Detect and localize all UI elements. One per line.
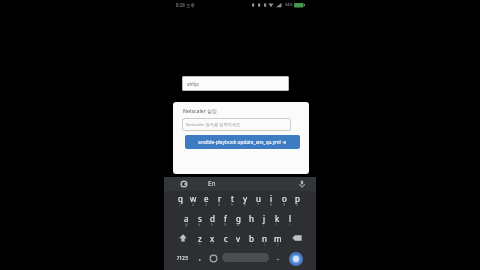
button[interactable]: y xyxy=(239,189,252,207)
button[interactable] xyxy=(176,231,190,245)
button[interactable] xyxy=(222,253,269,262)
button[interactable]: v xyxy=(232,229,245,247)
staticText: ansible-playbook update_ans_qa.yml -e xyxy=(198,139,287,146)
staticText: e xyxy=(204,193,209,204)
button[interactable]: e xyxy=(200,189,213,207)
button[interactable] xyxy=(290,232,304,244)
button[interactable]: j xyxy=(258,209,271,227)
staticText: f xyxy=(224,213,227,224)
staticText: 2 xyxy=(192,202,195,207)
staticText: z xyxy=(198,233,202,244)
staticText: ! xyxy=(264,243,265,247)
staticText: r xyxy=(218,193,222,204)
staticText: Netscaler 접속을 입력하세요 xyxy=(186,122,241,128)
staticText: x xyxy=(210,233,215,244)
button[interactable]: d xyxy=(206,209,219,227)
staticText: ? xyxy=(277,243,279,247)
staticText: * xyxy=(199,243,201,247)
button[interactable]: t xyxy=(226,189,239,207)
staticText: g xyxy=(236,213,241,224)
staticText: 8:28 오후 xyxy=(176,2,196,8)
staticText: 1 xyxy=(179,202,182,207)
staticText: k xyxy=(275,213,280,224)
staticText: m xyxy=(274,233,282,244)
button[interactable]: s xyxy=(193,209,206,227)
button[interactable]: ?123 xyxy=(172,251,193,266)
button[interactable]: k xyxy=(271,209,284,227)
staticText: ; xyxy=(251,243,252,247)
staticText: , xyxy=(199,253,201,263)
button[interactable]: b xyxy=(245,229,258,247)
staticText: i xyxy=(270,193,273,204)
staticText: 4 xyxy=(218,202,221,207)
button[interactable]: z xyxy=(193,229,206,247)
staticText: l xyxy=(289,213,292,224)
staticText: u xyxy=(256,193,261,204)
button[interactable]: l xyxy=(284,209,297,227)
staticText: ahfqs xyxy=(187,81,199,87)
button[interactable] xyxy=(289,252,303,266)
staticText: . xyxy=(277,253,279,263)
staticText: & xyxy=(237,223,240,227)
staticText: j xyxy=(263,213,266,224)
button[interactable]: ahfqs xyxy=(182,76,289,91)
staticText: $ xyxy=(211,223,213,227)
staticText: n xyxy=(262,233,267,244)
staticText: d xyxy=(210,213,215,224)
staticText: ' xyxy=(225,243,226,247)
staticText: 94% xyxy=(285,2,293,7)
staticText: w xyxy=(190,193,197,204)
staticText: h xyxy=(249,213,254,224)
staticText: 7 xyxy=(257,202,260,207)
staticText: c xyxy=(224,233,228,244)
button[interactable]: f xyxy=(219,209,232,227)
staticText: t xyxy=(231,193,234,204)
staticText: a xyxy=(184,213,189,224)
staticText: # xyxy=(198,223,201,227)
staticText: : xyxy=(238,243,239,247)
staticText: o xyxy=(282,193,287,204)
staticText: p xyxy=(295,193,300,204)
staticText: ?123 xyxy=(177,255,188,262)
button[interactable]: p xyxy=(291,189,304,207)
button[interactable]: g xyxy=(232,209,245,227)
button[interactable] xyxy=(209,254,218,263)
staticText: 5 xyxy=(231,202,234,207)
button[interactable]: . xyxy=(271,249,284,267)
staticText: ) xyxy=(289,223,290,227)
button[interactable]: w xyxy=(187,189,200,207)
button[interactable]: ansible-playbook update_ans_qa.yml -e xyxy=(185,135,300,149)
staticText: En xyxy=(208,179,216,188)
staticText: 6 xyxy=(244,202,247,207)
staticText: v xyxy=(236,233,241,244)
button[interactable]: o xyxy=(278,189,291,207)
staticText: % xyxy=(224,223,227,227)
staticText: @ xyxy=(185,223,188,227)
staticText: + xyxy=(263,223,265,227)
button[interactable]: a xyxy=(180,209,193,227)
button[interactable] xyxy=(164,177,316,191)
button[interactable]: n xyxy=(258,229,271,247)
button[interactable]: , xyxy=(193,249,206,267)
staticText: Netscaler 설정 xyxy=(183,108,218,115)
button[interactable]: q xyxy=(174,189,187,207)
button[interactable]: u xyxy=(252,189,265,207)
staticText: 3 xyxy=(205,202,208,207)
staticText: 9 xyxy=(283,202,286,207)
staticText: q xyxy=(178,193,183,204)
staticText: 8 xyxy=(270,202,273,207)
staticText: b xyxy=(249,233,254,244)
button[interactable]: m xyxy=(271,229,284,247)
staticText: ( xyxy=(276,223,277,227)
button[interactable]: c xyxy=(219,229,232,247)
staticText: 0 xyxy=(296,202,299,207)
button[interactable]: i xyxy=(265,189,278,207)
staticText: s xyxy=(198,213,202,224)
staticText: y xyxy=(243,193,248,204)
button[interactable]: r xyxy=(213,189,226,207)
button[interactable]: x xyxy=(206,229,219,247)
button[interactable]: Netscaler 접속을 입력하세요 xyxy=(182,118,291,131)
staticText: - xyxy=(250,223,252,227)
button[interactable]: h xyxy=(245,209,258,227)
staticText: " xyxy=(212,243,214,247)
